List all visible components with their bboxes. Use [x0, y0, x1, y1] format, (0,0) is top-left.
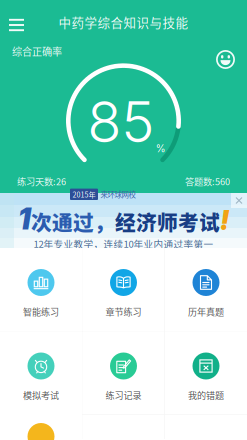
staticText: 智能练习: [23, 305, 59, 318]
staticText: 次通过，: [31, 207, 115, 236]
staticText: 综合正确率: [12, 44, 62, 58]
button[interactable]: 2015年: [0, 187, 247, 254]
staticText: 经济师考试: [115, 207, 220, 236]
button[interactable]: 我的错题: [165, 331, 247, 414]
button[interactable]: 智能练习: [0, 248, 82, 331]
staticText: 练习天数:26: [17, 175, 66, 188]
button[interactable]: Menu: [0, 13, 35, 37]
staticText: 85: [87, 88, 154, 156]
staticText: 中药学综合知识与技能: [58, 13, 188, 31]
button[interactable]: Mood: [216, 50, 235, 69]
staticText: 章节练习: [105, 305, 141, 318]
staticText: 历年真题: [188, 305, 224, 318]
button[interactable]: 练习记录: [82, 331, 164, 414]
staticText: 答题数:560: [185, 175, 230, 188]
staticText: 模拟考试: [23, 388, 59, 402]
staticText: !: [220, 204, 229, 236]
staticText: %: [156, 143, 166, 155]
button[interactable]: 历年真题: [165, 248, 247, 331]
staticText: 我的错题: [188, 388, 224, 402]
button[interactable]: 章节练习: [82, 248, 164, 331]
button[interactable]: 模拟考试: [0, 331, 82, 414]
staticText: 来环球网校: [100, 189, 135, 200]
staticText: 练习记录: [105, 388, 141, 402]
staticText: 12年专业教学，连续10年业内通过率第一: [33, 236, 213, 250]
staticText: 2015年: [72, 189, 95, 199]
staticText: 1: [18, 201, 31, 236]
